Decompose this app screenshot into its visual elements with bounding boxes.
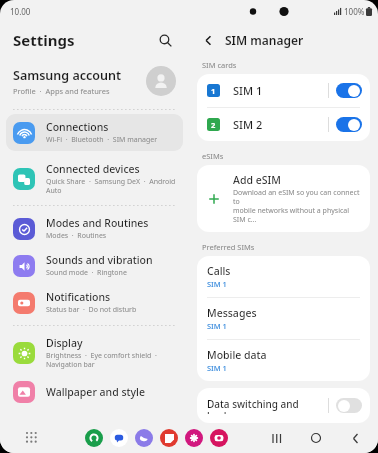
- staticText: Sounds and vibration: [46, 253, 153, 267]
- staticText: Add eSIM: [233, 173, 281, 187]
- staticText: Data switching and backup calling: [207, 397, 328, 414]
- button[interactable]: Toggle: [336, 398, 362, 413]
- staticText: 10.00: [10, 6, 31, 17]
- button[interactable]: Display: [6, 330, 183, 375]
- staticText: Wallpaper and style: [46, 385, 145, 399]
- button[interactable]: Connections: [6, 114, 183, 151]
- staticText: Sound mode · Ringtone: [46, 268, 127, 278]
- button[interactable]: Messages: [197, 298, 370, 339]
- button[interactable]: Home: [305, 427, 327, 449]
- button[interactable]: Notifications: [6, 284, 183, 321]
- staticText: eSIMs: [202, 151, 224, 161]
- button[interactable]: Connected devices: [6, 156, 183, 201]
- button[interactable]: 1: [197, 74, 370, 107]
- button[interactable]: Phone: [85, 429, 103, 447]
- staticText: Display: [46, 336, 83, 350]
- staticText: Preferred SIMs: [202, 242, 255, 252]
- staticText: Connected devices: [46, 162, 140, 176]
- button[interactable]: Wallpaper and style: [6, 375, 183, 409]
- staticText: Brightness · Eye comfort shield · Naviga…: [46, 351, 157, 369]
- staticText: SIM 1: [207, 321, 227, 331]
- staticText: 1: [211, 86, 216, 96]
- staticText: Calls: [207, 264, 231, 278]
- button[interactable]: Calls: [197, 256, 370, 297]
- button[interactable]: Recents: [266, 427, 288, 449]
- staticText: SIM cards: [202, 60, 237, 70]
- button[interactable]: 2: [197, 108, 370, 141]
- staticText: SIM 2: [233, 117, 328, 132]
- staticText: Mobile data: [207, 348, 267, 362]
- button[interactable]: Camera: [210, 429, 228, 447]
- staticText: Status bar · Do not disturb: [46, 305, 137, 315]
- staticText: 100%: [344, 6, 365, 17]
- staticText: Settings: [13, 30, 75, 50]
- button[interactable]: Messages: [110, 429, 128, 447]
- staticText: Samsung account: [13, 67, 121, 84]
- button[interactable]: Search: [153, 28, 177, 52]
- staticText: SIM 1: [233, 83, 328, 98]
- staticText: Modes and Routines: [46, 216, 149, 230]
- staticText: Quick Share · Samsung DeX · Android Auto: [46, 177, 176, 195]
- button[interactable]: Notes: [160, 429, 178, 447]
- button[interactable]: Internet: [135, 429, 153, 447]
- button[interactable]: Gallery: [185, 429, 203, 447]
- button[interactable]: Sounds and vibration: [6, 247, 183, 284]
- button[interactable]: Add eSIM: [197, 165, 370, 232]
- button[interactable]: Mobile data: [197, 340, 370, 381]
- button[interactable]: Apps: [22, 428, 42, 448]
- button[interactable]: Back: [197, 29, 219, 51]
- staticText: Connections: [46, 120, 109, 134]
- staticText: Download an eSIM so you can connect to m…: [233, 188, 360, 224]
- staticText: Notifications: [46, 290, 111, 304]
- button[interactable]: Toggle: [336, 83, 362, 98]
- staticText: SIM 1: [207, 279, 227, 289]
- staticText: Modes · Routines: [46, 231, 107, 241]
- staticText: Messages: [207, 306, 257, 320]
- button[interactable]: Data switching and backup calling: [197, 388, 370, 423]
- staticText: SIM 1: [207, 363, 227, 373]
- button[interactable]: Toggle: [336, 117, 362, 132]
- button[interactable]: Back: [344, 427, 366, 449]
- button[interactable]: Modes and Routines: [6, 210, 183, 247]
- staticText: Profile · Apps and features: [13, 86, 110, 96]
- staticText: SIM manager: [225, 32, 304, 48]
- button[interactable]: Samsung account: [0, 57, 189, 105]
- staticText: Wi-Fi · Bluetooth · SIM manager: [46, 135, 158, 145]
- staticText: 2: [211, 120, 216, 130]
